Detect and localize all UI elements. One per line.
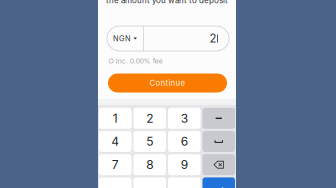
button[interactable]	[99, 177, 131, 188]
button[interactable]: 1	[99, 108, 131, 129]
button[interactable]	[202, 177, 235, 188]
button[interactable]	[202, 108, 235, 129]
staticText: the amount you want to deposit	[106, 0, 228, 5]
button[interactable]: 9	[168, 154, 200, 175]
button[interactable]	[168, 177, 200, 188]
staticText: 2	[209, 32, 216, 45]
button[interactable]	[202, 131, 235, 152]
staticText: 3	[181, 111, 188, 125]
staticText: 4	[111, 134, 119, 149]
button[interactable]: 4	[99, 131, 131, 152]
staticText: 7	[112, 157, 119, 172]
staticText: 9	[181, 157, 188, 172]
staticText: 6	[181, 134, 188, 149]
button[interactable]: Continue	[108, 73, 227, 92]
button[interactable]	[202, 154, 235, 175]
staticText: 1	[113, 111, 118, 125]
staticText: Continue	[149, 78, 185, 88]
staticText: Inc. 0.00% fee	[116, 57, 163, 65]
staticText: 2	[146, 111, 153, 125]
button[interactable]	[133, 177, 166, 188]
staticText: 5	[146, 134, 153, 149]
staticText: NGN	[113, 34, 131, 43]
button[interactable]: 7	[99, 154, 131, 175]
button[interactable]: 6	[168, 131, 200, 152]
button[interactable]: 3	[168, 108, 200, 129]
staticText: 8	[146, 157, 153, 172]
button[interactable]: 2	[133, 108, 166, 129]
button[interactable]: 8	[133, 154, 166, 175]
button[interactable]: 5	[133, 131, 166, 152]
button[interactable]: NGN	[107, 26, 143, 51]
